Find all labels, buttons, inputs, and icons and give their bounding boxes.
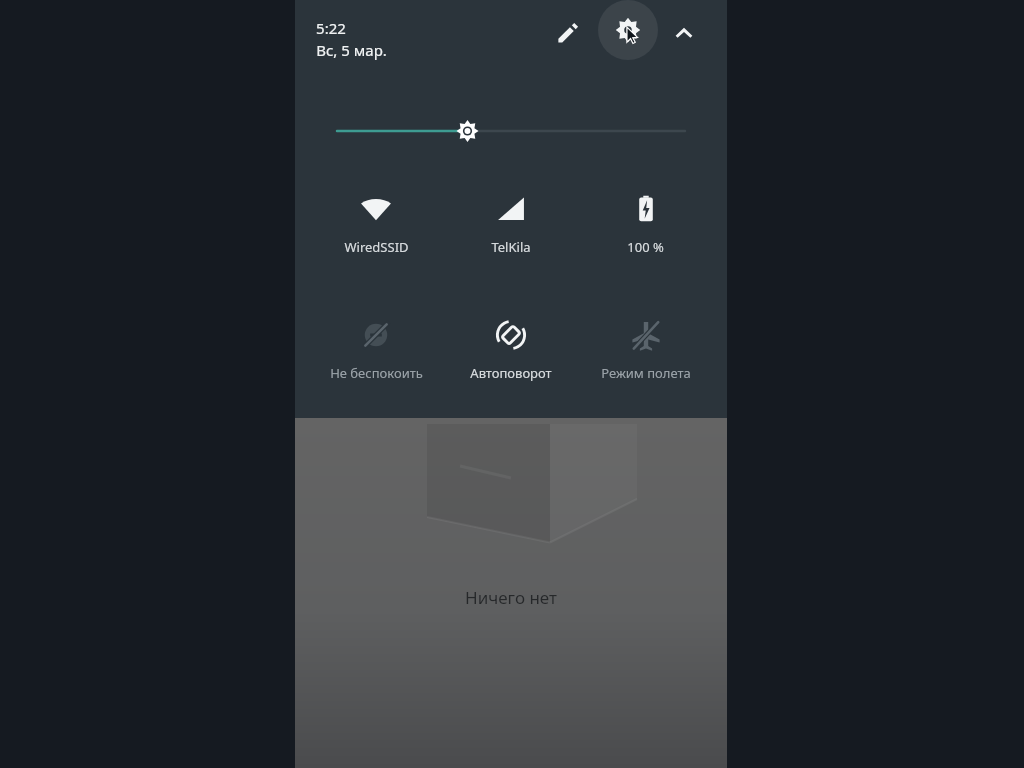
staticText: Ничего нет: [465, 586, 557, 609]
button[interactable]: Collapse: [660, 9, 708, 57]
staticText: Режим полета: [601, 364, 691, 382]
button[interactable]: TelKila: [443, 186, 578, 262]
staticText: TelKila: [491, 238, 531, 256]
staticText: WiredSSID: [344, 238, 409, 256]
button[interactable]: 100 %: [578, 186, 713, 262]
staticText: 5:22: [316, 18, 346, 38]
staticText: Автоповорот: [470, 364, 552, 382]
button[interactable]: Brightness: [337, 108, 685, 154]
button[interactable]: Edit: [544, 9, 592, 57]
button[interactable]: Режим полета: [578, 312, 713, 388]
staticText: Вс, 5 мар.: [316, 40, 387, 60]
staticText: Не беспокоить: [330, 364, 423, 382]
button[interactable]: WiredSSID: [309, 186, 443, 262]
staticText: 100 %: [627, 238, 664, 256]
button[interactable]: Settings: [598, 0, 658, 60]
button[interactable]: Автоповорот: [443, 312, 578, 388]
button[interactable]: Не беспокоить: [309, 312, 443, 388]
